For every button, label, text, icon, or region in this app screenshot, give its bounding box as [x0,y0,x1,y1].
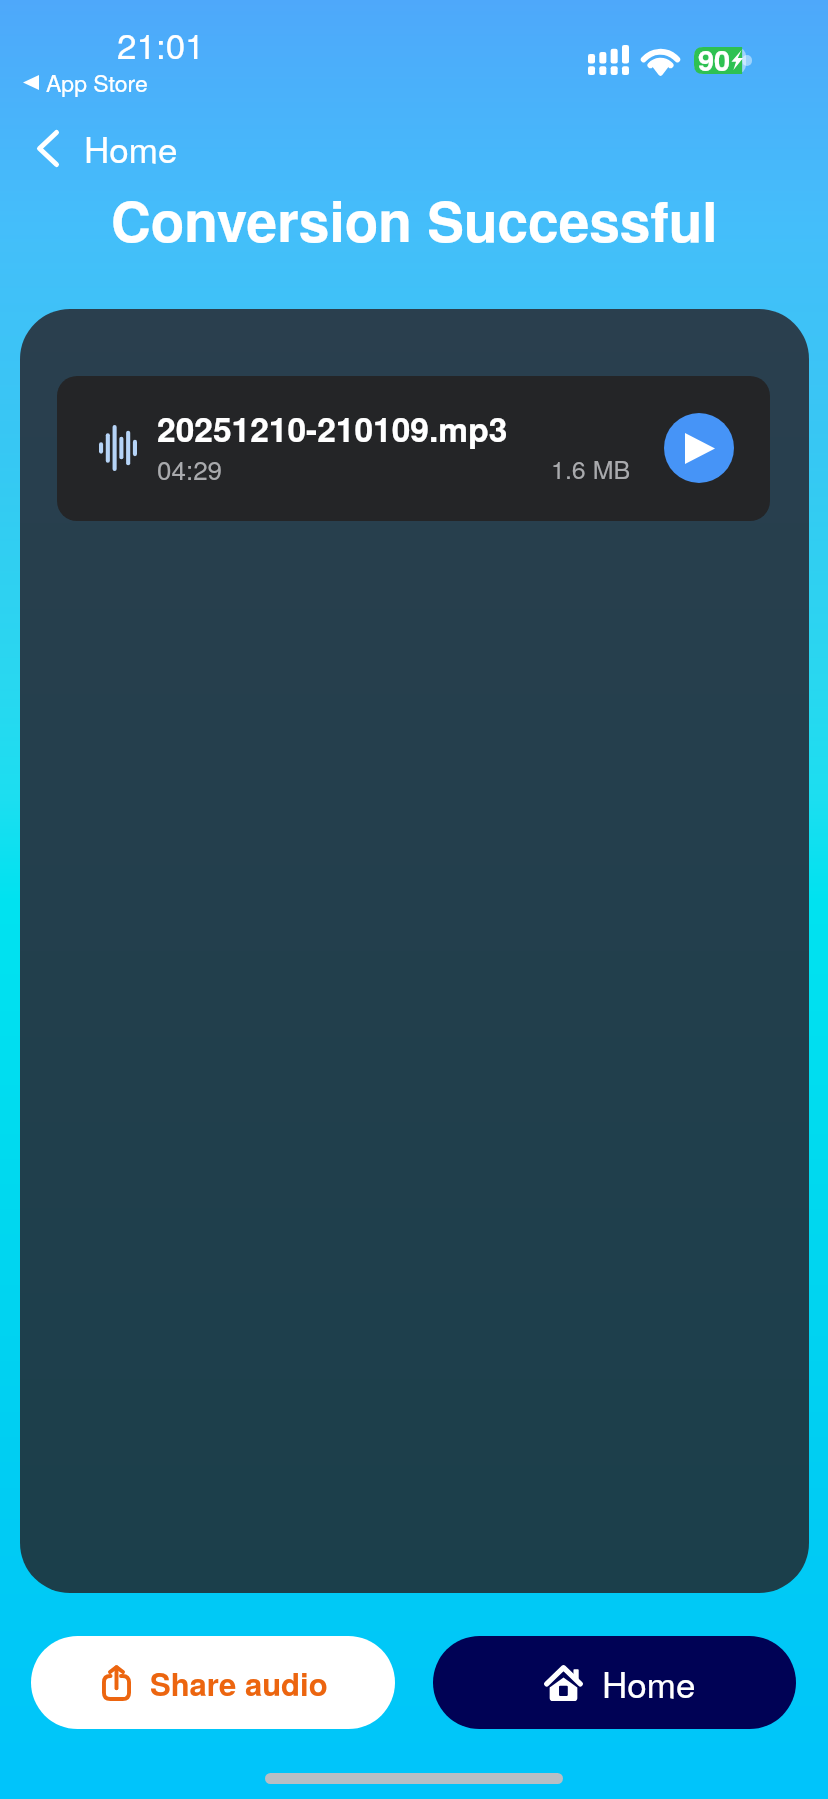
button[interactable]: Share audio [31,1636,395,1729]
button[interactable]: App Store [23,66,148,99]
staticText: App Store [46,66,148,99]
staticText: 90 [698,38,731,80]
staticText: 20251210-210109.mp3 [157,404,508,452]
button[interactable]: Home [0,118,202,178]
staticText: Share audio [150,1661,328,1705]
button[interactable]: Home [433,1636,796,1729]
staticText: 1.6 MB [551,450,631,486]
button[interactable]: 20251210-210109.mp3 [57,376,770,521]
staticText: Home [84,123,178,173]
staticText: Home [602,1658,696,1708]
staticText: 04:29 [157,450,223,487]
staticText: 21:01 [117,19,205,69]
button[interactable]: Play [664,413,734,483]
staticText: Conversion Successful [111,180,718,259]
